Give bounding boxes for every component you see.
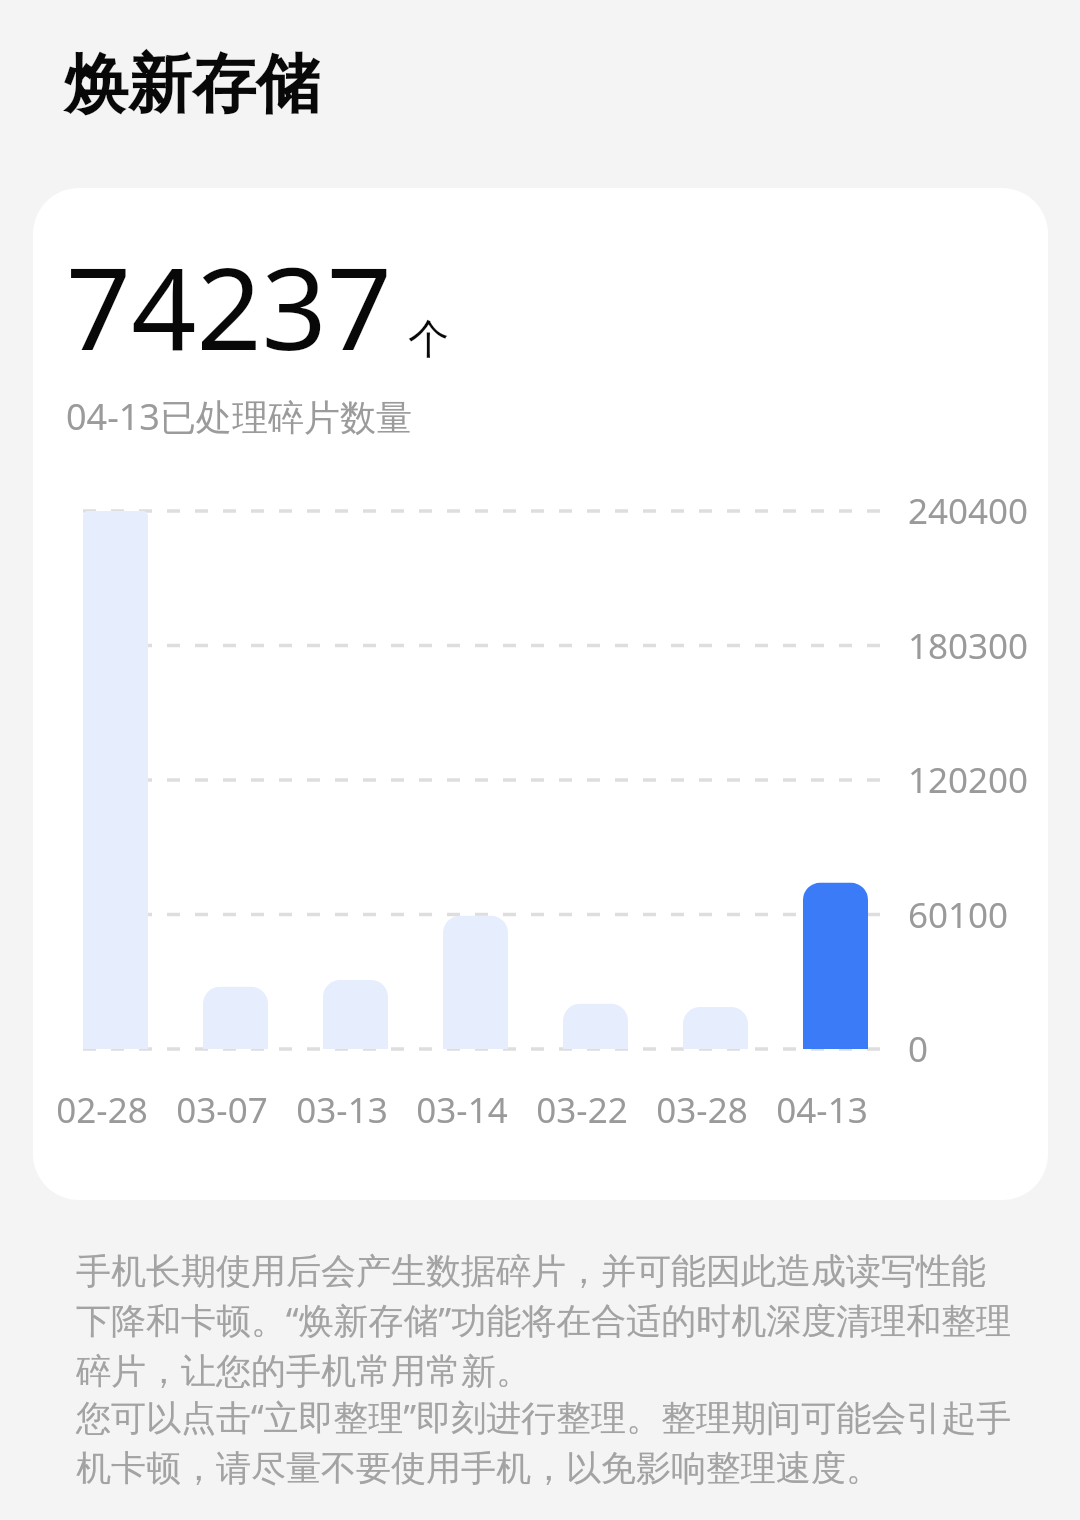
staticText: 03-22 (536, 1086, 628, 1134)
staticText: 02-28 (56, 1086, 148, 1134)
staticText: 240400 (908, 487, 1029, 535)
staticText: 手机长期使用后会产生数据碎片，并可能因此造成读写性能下降和卡顿。“焕新存储”功能… (76, 1249, 1016, 1393)
staticText: 60100 (908, 891, 1009, 939)
staticText: 0 (908, 1025, 929, 1073)
staticText: 03-07 (176, 1086, 268, 1134)
staticText: 03-13 (296, 1086, 388, 1134)
staticText: 您可以点击“立即整理”即刻进行整理。整理期间可能会引起手机卡顿，请尽量不要使用手… (76, 1393, 1016, 1490)
button[interactable]: 74237 (33, 188, 1048, 1200)
staticText: 04-13 (776, 1086, 868, 1134)
staticText: 03-14 (416, 1086, 508, 1134)
staticText: 04-13已处理碎片数量 (66, 392, 412, 441)
staticText: 焕新存储 (64, 44, 320, 125)
staticText: 120200 (908, 756, 1029, 804)
staticText: 180300 (908, 622, 1029, 670)
staticText: 03-28 (656, 1086, 748, 1134)
staticText: 个 (408, 314, 449, 366)
staticText: 74237 (66, 228, 393, 383)
